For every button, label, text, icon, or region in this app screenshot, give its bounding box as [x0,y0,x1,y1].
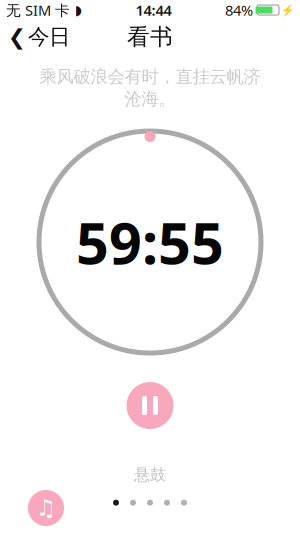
button[interactable]: Sound [23,485,69,531]
staticText: ♫ [36,495,56,521]
staticText: 乘风破浪会有时，直挂云帆济 [39,66,260,87]
button[interactable]: Pause [119,374,181,436]
staticText: 今日 [28,24,70,50]
staticText: 无 SIM 卡 [6,0,70,20]
staticText: 59:55 [76,204,224,280]
staticText: 沧海。 [124,88,175,110]
staticText: 看书 [127,23,173,51]
staticText: 悬鼓 [134,465,166,485]
button[interactable]: ❮ [0,18,78,56]
staticText: 84% [225,0,253,20]
staticText: ◗ [75,2,82,17]
staticText: ❮ [8,25,26,49]
staticText: 14:44 [135,0,171,20]
staticText: ⚡ [281,4,294,16]
